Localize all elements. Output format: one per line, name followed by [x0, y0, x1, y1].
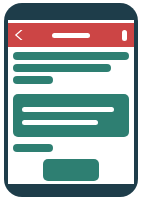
button[interactable]: Back: [12, 27, 28, 43]
button[interactable]: Submit: [43, 159, 99, 181]
button[interactable]: [13, 94, 129, 137]
button[interactable]: More options: [122, 30, 127, 41]
